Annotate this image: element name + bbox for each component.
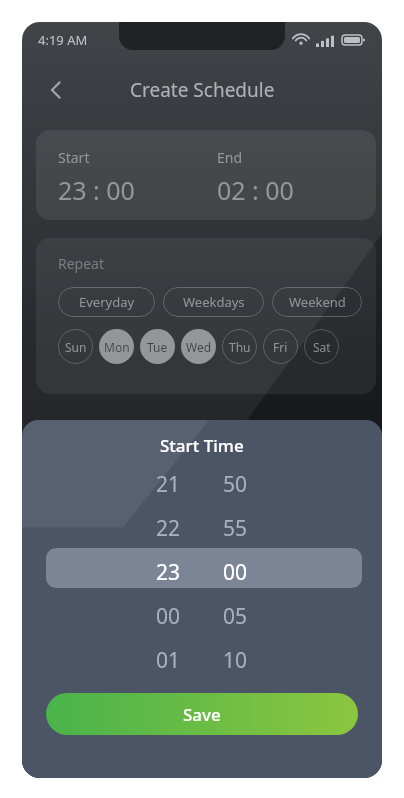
staticText: Create Schedule [130, 77, 275, 103]
button[interactable]: 50 [215, 470, 255, 499]
button[interactable]: 05 [215, 602, 255, 631]
button[interactable]: 23 [148, 558, 188, 587]
button[interactable]: Back [34, 68, 78, 112]
button[interactable]: Sat [304, 329, 339, 364]
button[interactable]: 00 [148, 602, 188, 631]
button[interactable]: Tue [140, 329, 175, 364]
button[interactable]: 21 [148, 470, 188, 499]
staticText: Fri [273, 339, 288, 355]
staticText: Save [183, 703, 221, 726]
button[interactable]: Wed [181, 329, 216, 364]
staticText: Sun [65, 339, 87, 355]
button[interactable]: Weekdays [163, 287, 264, 317]
button[interactable]: 22 [148, 514, 188, 543]
staticText: Mon [104, 339, 130, 355]
button[interactable]: 00 [215, 558, 255, 587]
button[interactable]: Thu [222, 329, 257, 364]
button[interactable]: 55 [215, 514, 255, 543]
button[interactable]: 10 [215, 646, 255, 675]
staticText: Start [58, 148, 90, 167]
staticText: Sat [313, 339, 331, 355]
button[interactable]: Mon [99, 329, 134, 364]
staticText: End [217, 148, 243, 167]
button[interactable]: Weekend [272, 287, 362, 317]
staticText: Weekend [289, 293, 346, 311]
button[interactable]: Everyday [58, 287, 155, 317]
staticText: 02 : 00 [217, 173, 294, 207]
staticText: 4:19 AM [38, 31, 88, 49]
button[interactable]: 01 [148, 646, 188, 675]
button[interactable]: Fri [263, 329, 298, 364]
staticText: Thu [229, 339, 251, 355]
staticText: Tue [147, 339, 168, 355]
staticText: Repeat [58, 254, 105, 273]
staticText: Weekdays [183, 293, 245, 311]
staticText: Start Time [160, 434, 244, 457]
staticText: Everyday [79, 293, 135, 311]
staticText: Wed [186, 339, 212, 355]
staticText: 23 : 00 [58, 173, 135, 207]
button[interactable]: Sun [58, 329, 93, 364]
button[interactable]: Start [36, 130, 376, 220]
button[interactable]: Save [46, 693, 358, 735]
